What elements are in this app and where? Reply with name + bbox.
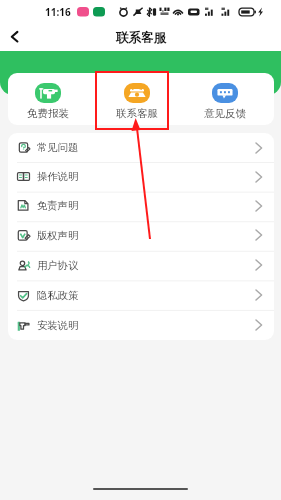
- button[interactable]: 用户协议: [8, 250, 274, 280]
- staticText: 版权声明: [37, 229, 79, 242]
- staticText: 11:16: [45, 5, 71, 19]
- button[interactable]: 版权声明: [8, 220, 274, 250]
- button[interactable]: 免费报装: [20, 83, 76, 120]
- button[interactable]: 安装说明: [8, 310, 274, 340]
- staticText: 意见反馈: [204, 107, 246, 120]
- staticText: 用户协议: [37, 259, 79, 272]
- staticText: 常见问题: [37, 141, 79, 154]
- button[interactable]: 联系客服: [109, 83, 165, 120]
- staticText: 免责声明: [37, 199, 79, 212]
- button[interactable]: 免责声明: [8, 191, 274, 220]
- staticText: 联系客服: [116, 107, 158, 120]
- button[interactable]: 操作说明: [8, 162, 274, 191]
- staticText: 安装说明: [37, 319, 79, 332]
- button[interactable]: 常见问题: [8, 133, 274, 162]
- staticText: 操作说明: [37, 170, 79, 183]
- button[interactable]: Back: [0, 23, 28, 51]
- staticText: 免费报装: [27, 107, 69, 120]
- staticText: 联系客服: [116, 30, 166, 46]
- button[interactable]: 隐私政策: [8, 280, 274, 310]
- button[interactable]: 意见反馈: [197, 83, 253, 120]
- staticText: 隐私政策: [37, 289, 79, 302]
